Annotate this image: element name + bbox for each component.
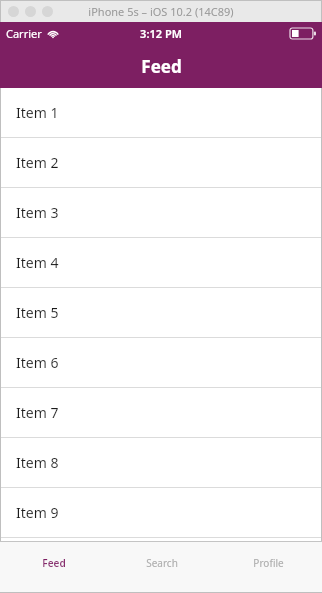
staticText: Item 9	[16, 503, 59, 522]
button[interactable]: Item 7	[0, 388, 322, 437]
staticText: Item 6	[16, 353, 59, 372]
staticText: Profile	[253, 556, 284, 570]
button[interactable]: Profile	[215, 542, 322, 592]
staticText: Item 3	[16, 203, 59, 222]
staticText: Item 1	[16, 103, 59, 122]
button[interactable]: Search	[108, 542, 215, 592]
button[interactable]: Item 6	[0, 338, 322, 387]
staticText: 3:12 PM	[140, 26, 182, 41]
staticText: Item 4	[16, 253, 59, 272]
staticText: Item 8	[16, 453, 59, 472]
staticText: Search	[146, 556, 178, 570]
button[interactable]: Item 5	[0, 288, 322, 337]
staticText: Carrier	[6, 26, 42, 41]
staticText: Feed	[141, 55, 182, 78]
staticText: Item 7	[16, 403, 59, 422]
button[interactable]: Item 1	[0, 88, 322, 137]
button[interactable]: Item 3	[0, 188, 322, 237]
button[interactable]: Feed	[0, 542, 108, 592]
button[interactable]: Item 9	[0, 488, 322, 537]
staticText: iPhone 5s – iOS 10.2 (14C89)	[88, 4, 234, 19]
staticText: Item 5	[16, 303, 59, 322]
button[interactable]: Item 4	[0, 238, 322, 287]
staticText: Feed	[42, 556, 66, 570]
button[interactable]: Item 2	[0, 138, 322, 187]
staticText: Item 2	[16, 153, 59, 172]
button[interactable]: Item 8	[0, 438, 322, 487]
